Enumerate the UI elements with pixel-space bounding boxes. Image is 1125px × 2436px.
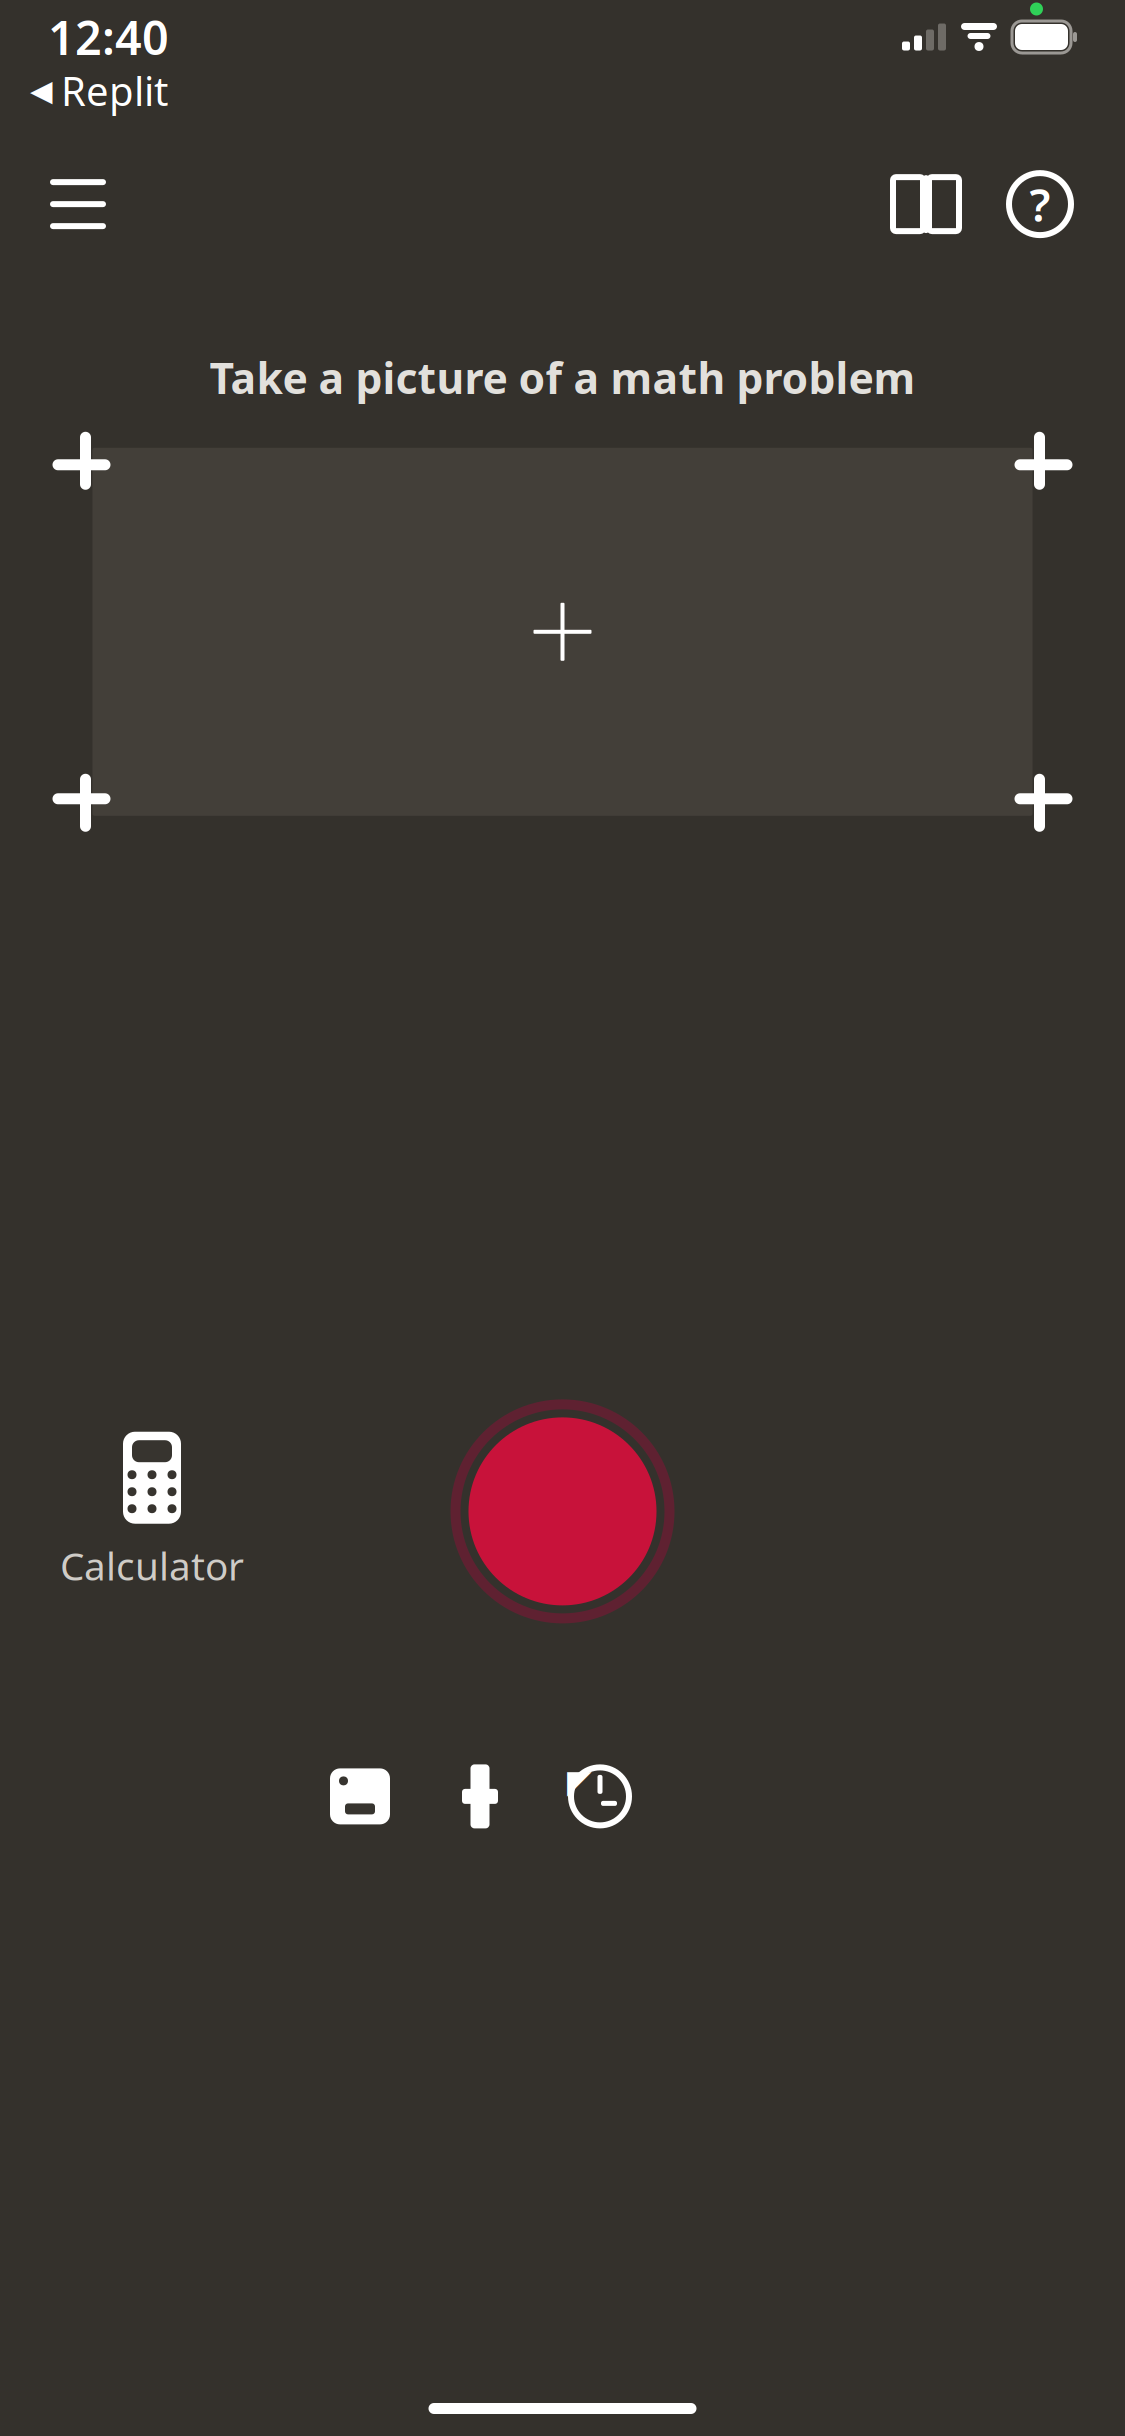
button[interactable]: History [540, 1748, 660, 1844]
button[interactable]: Take picture [450, 1399, 674, 1623]
button[interactable]: Photo library [300, 1748, 420, 1844]
staticText: ? [1029, 174, 1050, 234]
button[interactable]: Textbook solutions [869, 157, 983, 251]
button[interactable]: Help [983, 155, 1097, 253]
staticText: ◤ [567, 1763, 592, 1800]
button[interactable]: Menu [28, 159, 128, 249]
staticText: ◀ [30, 74, 53, 107]
staticText: Calculator [60, 1540, 244, 1591]
staticText: Replit [61, 64, 168, 117]
button[interactable]: Flash [420, 1748, 540, 1844]
button[interactable]: Calculator [34, 1420, 270, 1603]
button[interactable]: ◀ [0, 58, 198, 125]
staticText: 12:40 [48, 6, 169, 68]
staticText: Take a picture of a math problem [209, 349, 915, 406]
